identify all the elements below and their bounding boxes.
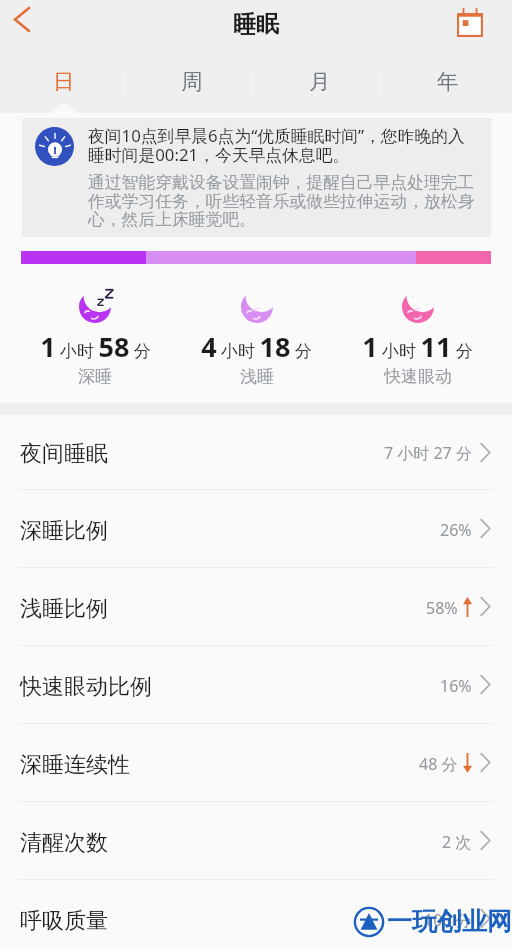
staticText: 4 小时 18 分 xyxy=(201,328,312,365)
staticText: 周 xyxy=(181,68,203,95)
button[interactable]: 1 小时 58 分 xyxy=(14,290,176,387)
button[interactable]: 年 xyxy=(384,51,512,113)
button[interactable]: 深睡连续性 xyxy=(0,724,512,801)
staticText: 2 次 xyxy=(442,831,472,853)
button[interactable]: 日 xyxy=(0,51,128,113)
button[interactable]: 快速眼动比例 xyxy=(0,646,512,723)
staticText: 呼吸质量 xyxy=(20,907,108,935)
staticText: 快速眼动比例 xyxy=(20,673,152,701)
staticText: 清醒次数 xyxy=(20,829,108,857)
button[interactable]: 清醒次数 xyxy=(0,802,512,879)
staticText: 58% xyxy=(426,597,458,619)
button[interactable]: Calendar xyxy=(447,0,493,45)
staticText: 48 分 xyxy=(419,753,458,775)
staticText: 一玩创业网 xyxy=(387,906,512,937)
staticText: 睡眠 xyxy=(233,10,279,39)
staticText: 16% xyxy=(440,675,472,697)
button[interactable]: 月 xyxy=(256,51,384,113)
staticText: 浅睡 xyxy=(240,366,274,387)
staticText: 通过智能穿戴设备设置闹钟，提醒自己早点处理完工作或学习任务，听些轻音乐或做些拉伸… xyxy=(88,172,478,230)
button[interactable]: 4 小时 18 分 xyxy=(176,290,337,387)
button[interactable]: 夜间10点到早晨6点为“优质睡眠时间”，您昨晚的入睡时间是00:21，今天早点休… xyxy=(22,118,491,237)
button[interactable]: 1 小时 11 分 xyxy=(337,290,498,387)
button[interactable]: 夜间睡眠 xyxy=(0,415,512,489)
button[interactable]: 浅睡比例 xyxy=(0,568,512,645)
staticText: 100 分 xyxy=(424,909,472,931)
staticText: 年 xyxy=(437,68,459,95)
staticText: 26% xyxy=(440,519,472,541)
staticText: 夜间10点到早晨6点为“优质睡眠时间”，您昨晚的入睡时间是00:21，今天早点休… xyxy=(88,124,478,166)
staticText: 快速眼动 xyxy=(384,366,452,387)
button[interactable]: Back xyxy=(0,0,44,44)
staticText: 日 xyxy=(53,68,75,95)
staticText: 夜间睡眠 xyxy=(20,440,108,468)
staticText: 1 小时 58 分 xyxy=(40,328,151,365)
staticText: 深睡 xyxy=(78,366,112,387)
button[interactable]: 周 xyxy=(128,51,256,113)
button[interactable]: 深睡比例 xyxy=(0,490,512,567)
button[interactable]: 呼吸质量 xyxy=(0,880,512,949)
staticText: 深睡连续性 xyxy=(20,751,130,779)
staticText: 浅睡比例 xyxy=(20,595,108,623)
staticText: 1 小时 11 分 xyxy=(362,328,473,365)
staticText: 月 xyxy=(309,68,331,95)
staticText: 7 小时 27 分 xyxy=(384,442,472,464)
staticText: 深睡比例 xyxy=(20,517,108,545)
